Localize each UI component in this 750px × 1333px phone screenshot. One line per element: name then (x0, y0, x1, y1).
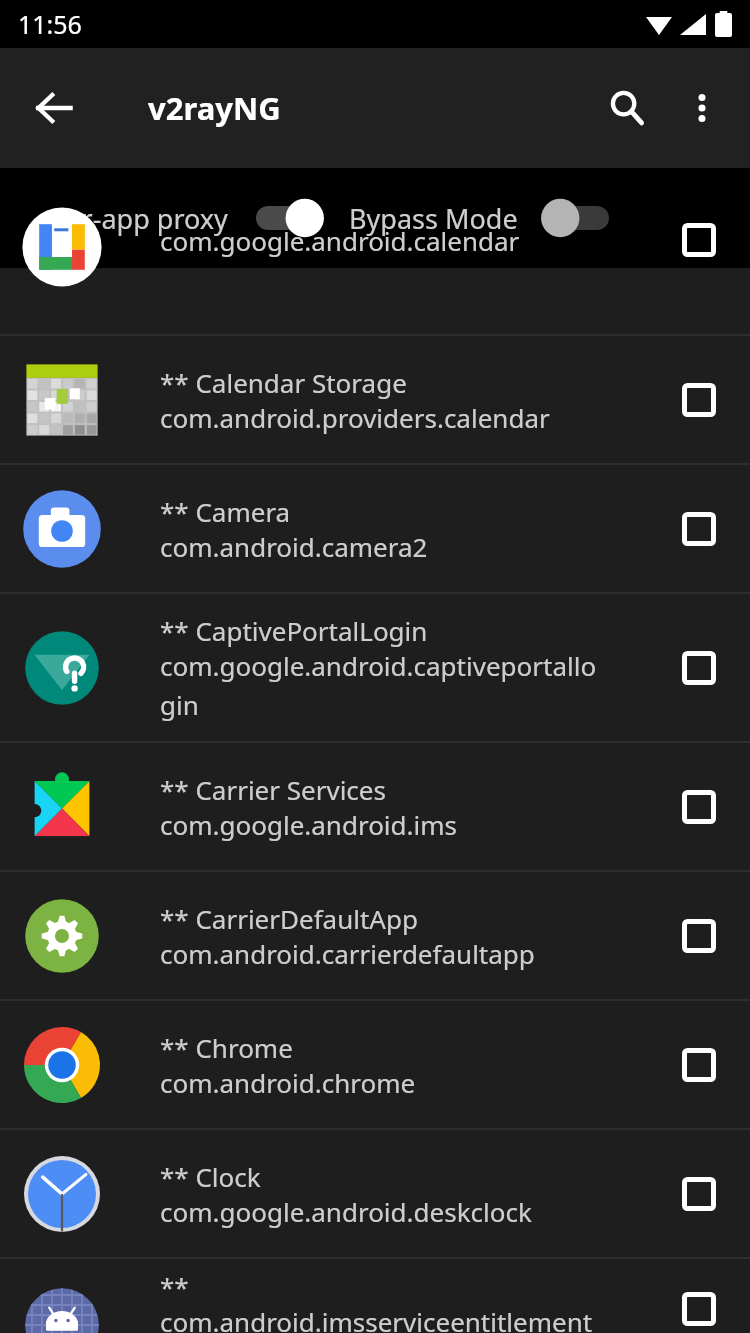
button[interactable]: com.google.android.calendar (0, 207, 750, 273)
button[interactable]: ** Chrome (0, 1001, 750, 1128)
button[interactable]: Per-app proxy (50, 198, 323, 238)
staticText: ** Clock (160, 1159, 261, 1194)
staticText: com.android.imsserviceentitlement (160, 1304, 593, 1333)
button[interactable]: ** CaptivePortalLogin (0, 594, 750, 741)
staticText: ** Calendar Storage (160, 365, 407, 400)
staticText: com.google.android.deskclock (160, 1194, 532, 1229)
staticText: ** CaptivePortalLogin (160, 613, 428, 648)
button[interactable]: ** Camera (0, 465, 750, 592)
button[interactable]: ** Carrier Services (0, 743, 750, 870)
button[interactable]: Bypass Mode (349, 198, 609, 238)
button[interactable]: ** Clock (0, 1130, 750, 1257)
staticText: v2rayNG (148, 87, 281, 129)
staticText: 11:56 (18, 7, 82, 41)
staticText: ** Chrome (160, 1030, 293, 1065)
button[interactable]: Select app (662, 1285, 736, 1333)
button[interactable]: ** (0, 1259, 750, 1333)
staticText: Per-app proxy (50, 200, 228, 237)
button[interactable]: Select app (662, 631, 736, 705)
staticText: ** CarrierDefaultApp (160, 901, 418, 936)
staticText: ** Carrier Services (160, 772, 386, 807)
staticText: com.google.android.ims (160, 807, 457, 842)
staticText: com.android.camera2 (160, 529, 428, 564)
button[interactable]: ** CarrierDefaultApp (0, 872, 750, 999)
staticText: com.google.android.calendar (160, 223, 520, 258)
button[interactable]: Select app (662, 899, 736, 973)
staticText: ** (160, 1269, 189, 1304)
button[interactable]: Select app (662, 363, 736, 437)
button[interactable]: ** Calendar Storage (0, 336, 750, 463)
button[interactable]: Select app (662, 207, 736, 273)
button[interactable]: Back (18, 72, 90, 144)
button[interactable]: More options (666, 72, 738, 144)
staticText: com.google.android.captiveportallo gin (160, 648, 597, 723)
staticText: com.android.providers.calendar (160, 400, 550, 435)
staticText: com.android.carrierdefaultapp (160, 936, 535, 971)
button[interactable]: Select app (662, 770, 736, 844)
button[interactable]: Select app (662, 1028, 736, 1102)
staticText: ** Camera (160, 494, 291, 529)
button[interactable]: com.google.android.calendar (0, 268, 750, 334)
button[interactable]: Select app (662, 492, 736, 566)
staticText: com.android.chrome (160, 1065, 416, 1100)
button[interactable]: Select app (662, 1157, 736, 1231)
staticText: Bypass Mode (349, 200, 518, 237)
button[interactable]: Search (588, 69, 666, 147)
